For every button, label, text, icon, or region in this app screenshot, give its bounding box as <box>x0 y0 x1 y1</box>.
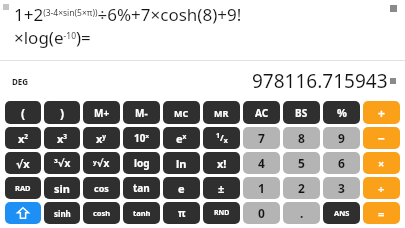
button[interactable]: × <box>363 152 400 174</box>
button[interactable]: RAD <box>5 177 41 199</box>
staticText: 5 <box>298 155 305 171</box>
button[interactable]: x3 <box>44 127 80 149</box>
staticText: 6 <box>338 155 345 171</box>
staticText: x3 <box>57 131 68 146</box>
staticText: ex <box>176 131 187 146</box>
staticText: 7 <box>258 130 265 146</box>
button[interactable]: M- <box>123 101 160 124</box>
button[interactable]: log <box>123 152 160 174</box>
button[interactable]: π <box>163 202 200 224</box>
staticText: sin <box>54 181 70 196</box>
button[interactable]: . <box>283 202 320 224</box>
button[interactable]: ) <box>44 101 80 124</box>
staticText: ± <box>218 181 225 196</box>
button[interactable]: ln <box>163 152 200 174</box>
button[interactable]: sin <box>44 177 80 199</box>
staticText: x2 <box>18 131 29 146</box>
button[interactable]: BS <box>283 101 320 124</box>
staticText: 4 <box>258 155 265 171</box>
button[interactable]: x2 <box>5 127 41 149</box>
staticText: MC <box>174 107 189 119</box>
button[interactable]: 0 <box>243 202 280 224</box>
staticText: xy <box>96 131 107 146</box>
staticText: . <box>300 205 304 221</box>
staticText: e <box>178 181 185 196</box>
button[interactable]: MR <box>203 101 240 124</box>
staticText: ( <box>21 105 26 121</box>
button[interactable]: % <box>323 101 360 124</box>
button[interactable]: cosh <box>83 202 120 224</box>
button[interactable]: ( <box>5 101 41 124</box>
button[interactable]: 9 <box>323 127 360 149</box>
staticText: ANS <box>334 208 350 218</box>
button[interactable]: = <box>363 202 400 224</box>
staticText: 10x <box>134 131 149 145</box>
staticText: MR <box>214 107 229 119</box>
button[interactable]: ʸ√x <box>83 152 120 174</box>
staticText: % <box>337 105 347 120</box>
button[interactable]: 3 <box>323 177 360 199</box>
staticText: sinh <box>54 208 71 219</box>
button[interactable]: 1 <box>243 177 280 199</box>
button[interactable]: tan <box>123 177 160 199</box>
staticText: 1 <box>258 180 265 196</box>
staticText: RAD <box>15 183 31 193</box>
staticText: ) <box>60 105 65 121</box>
staticText: ln <box>176 156 187 171</box>
staticText: = <box>378 206 385 221</box>
button[interactable]: DEG <box>12 76 29 87</box>
staticText: ×log(e-10)= <box>14 26 91 49</box>
staticText: 1/x <box>216 131 228 145</box>
button[interactable]: tanh <box>123 202 160 224</box>
staticText: − <box>378 130 385 146</box>
button[interactable]: MC <box>163 101 200 124</box>
button[interactable]: x! <box>203 152 240 174</box>
staticText: 978116.715943 <box>252 68 388 94</box>
button[interactable]: ex <box>163 127 200 149</box>
staticText: log <box>134 156 150 170</box>
button[interactable]: 8 <box>283 127 320 149</box>
button[interactable]: 7 <box>243 127 280 149</box>
staticText: ʸ√x <box>93 156 110 170</box>
button[interactable]: ± <box>203 177 240 199</box>
staticText: tan <box>133 181 150 195</box>
staticText: M- <box>135 106 148 120</box>
staticText: 9 <box>338 130 345 146</box>
button[interactable]: 4 <box>243 152 280 174</box>
button[interactable]: e <box>163 177 200 199</box>
staticText: RND <box>214 208 230 218</box>
button[interactable]: 5 <box>283 152 320 174</box>
staticText: tanh <box>133 208 151 218</box>
button[interactable]: 6 <box>323 152 360 174</box>
button[interactable]: RND <box>203 202 240 224</box>
button[interactable]: ³√x <box>44 152 80 174</box>
button[interactable]: 2 <box>283 177 320 199</box>
button[interactable]: ANS <box>323 202 360 224</box>
staticText: cos <box>94 182 109 194</box>
staticText: x! <box>217 156 227 171</box>
button[interactable]: 1/x <box>203 127 240 149</box>
button[interactable]: AC <box>243 101 280 124</box>
staticText: 8 <box>298 130 305 146</box>
staticText: ÷ <box>378 181 385 196</box>
button[interactable]: √x <box>5 152 41 174</box>
staticText: M+ <box>94 106 110 120</box>
button[interactable]: ÷ <box>363 177 400 199</box>
button[interactable]: Shift <box>5 202 41 224</box>
staticText: 3 <box>338 180 345 196</box>
staticText: 1+2(3-4×sin(5×π))÷6%+7×cosh(8)+9! <box>14 3 242 26</box>
staticText: π <box>178 206 186 220</box>
button[interactable]: cos <box>83 177 120 199</box>
staticText: BS <box>295 106 308 120</box>
staticText: AC <box>255 106 269 120</box>
button[interactable]: sinh <box>44 202 80 224</box>
staticText: 2 <box>298 180 305 196</box>
button[interactable]: M+ <box>83 101 120 124</box>
button[interactable]: xy <box>83 127 120 149</box>
staticText: √x <box>16 156 30 171</box>
button[interactable]: − <box>363 127 400 149</box>
button[interactable]: + <box>363 101 400 124</box>
button[interactable]: 10x <box>123 127 160 149</box>
